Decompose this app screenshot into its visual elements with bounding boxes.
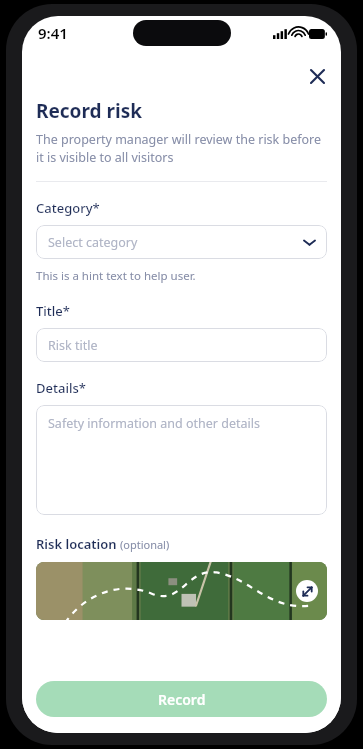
button[interactable]: Risk title [36,328,327,362]
staticText: Safety information and other details [48,415,315,432]
staticText: Risk location (optional) [36,535,170,553]
staticText: The property manager will review the ris… [36,131,327,166]
button[interactable]: Expand map [36,562,327,620]
staticText: Title* [36,302,70,320]
button[interactable]: Select category [36,225,327,259]
staticText: This is a hint text to help user. [36,268,196,284]
staticText: Record risk [36,98,143,124]
button[interactable]: Expand map [296,580,318,602]
staticText: Details* [36,379,86,397]
button[interactable]: Safety information and other details [36,405,327,515]
staticText: Risk title [48,337,315,354]
button[interactable]: Record [36,681,327,717]
staticText: Select category [48,234,304,251]
staticText: Category* [36,199,100,217]
button[interactable]: Close [301,60,333,92]
staticText: Record [158,690,206,709]
staticText: 9:41 [38,23,68,43]
